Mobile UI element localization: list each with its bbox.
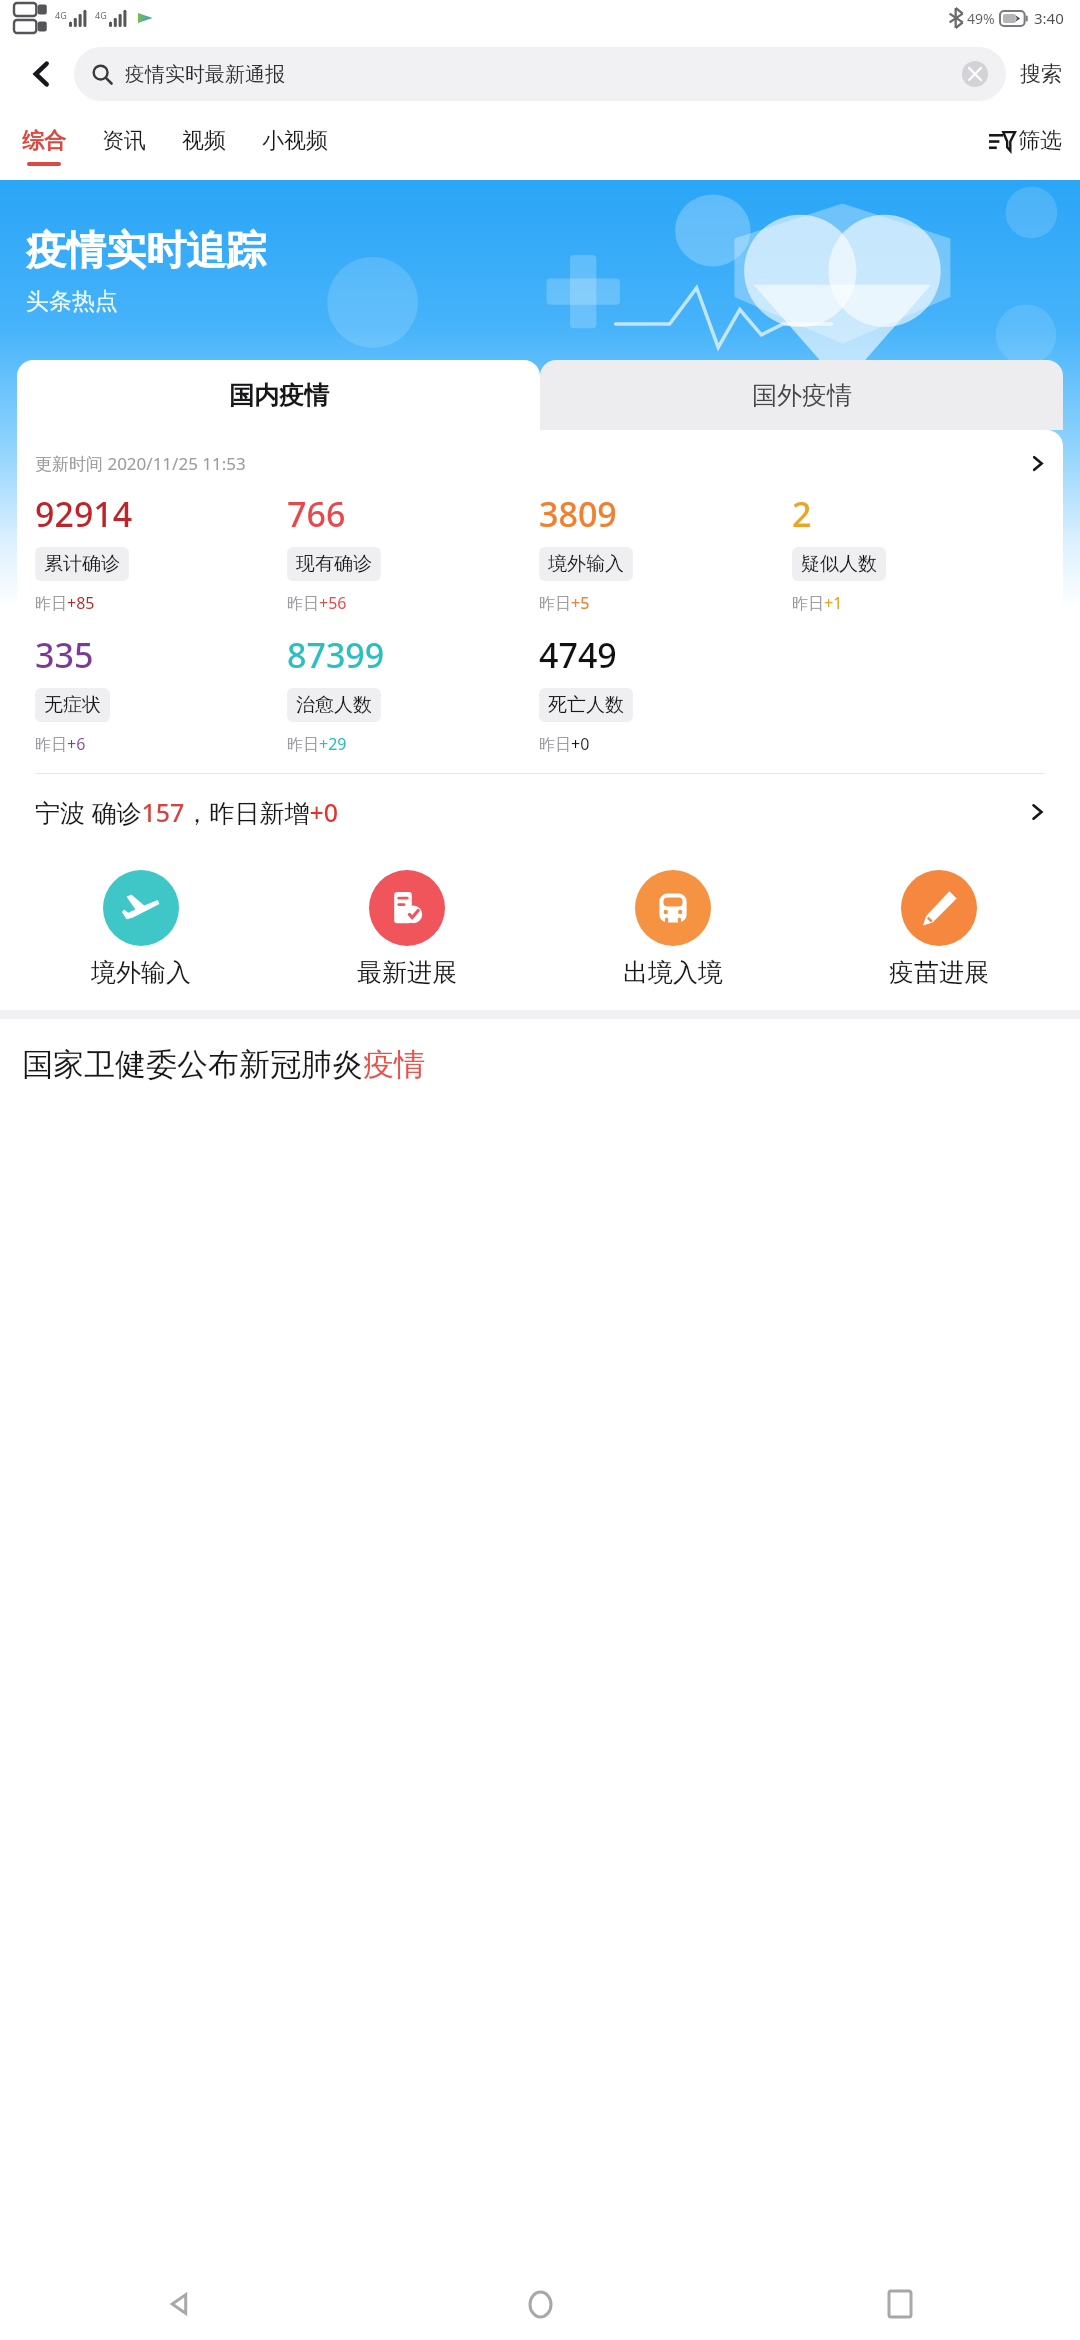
staticText: 境外输入 [548,552,624,576]
button[interactable]: 92914 [35,491,287,614]
staticText: 昨日+85 [35,592,95,614]
button[interactable]: 3809 [539,491,792,614]
staticText: 3809 [539,491,617,537]
staticText: 92914 [35,491,133,537]
button[interactable]: Back [16,48,68,100]
staticText: 国内疫情 [229,380,329,411]
button[interactable]: 宁波 确诊157，昨日新增+0 [35,774,1045,850]
staticText: 766 [287,491,346,537]
staticText: 疫情实时追踪 [26,225,266,275]
staticText: 筛选 [1018,127,1062,155]
button[interactable]: 综合 [22,127,66,166]
staticText: 国家卫健委公布新冠肺炎疫情 [22,1045,425,1084]
button[interactable]: 疫情实时最新通报 [74,47,1006,101]
button[interactable]: Back [0,2268,360,2340]
staticText: 4749 [539,632,617,678]
staticText: 87399 [287,632,385,678]
button[interactable]: 出境入境 [540,870,806,988]
staticText: 治愈人数 [296,693,372,717]
staticText: 死亡人数 [548,693,624,717]
button[interactable]: 境外输入 [8,870,274,988]
button[interactable]: 335 [35,632,287,755]
button[interactable]: 766 [287,491,539,614]
button[interactable]: 国家卫健委公布新冠肺炎疫情 [22,1045,1058,1084]
staticText: 累计确诊 [44,552,120,576]
staticText: 4G [55,9,67,21]
staticText: 宁波 确诊157，昨日新增+0 [35,795,339,829]
staticText: 疫情实时最新通报 [125,62,962,87]
staticText: 搜索 [1020,61,1062,87]
staticText: 国外疫情 [752,380,852,411]
staticText: 昨日+0 [539,733,590,755]
staticText: 无症状 [44,693,101,717]
staticText: 更新时间 2020/11/25 11:53 [35,452,246,475]
button[interactable]: 疫苗进展 [806,870,1072,988]
staticText: 335 [35,632,94,678]
button[interactable]: 国外疫情 [540,360,1063,430]
staticText: 昨日+1 [792,592,843,614]
button[interactable]: 筛选 [989,127,1080,166]
staticText: 疑似人数 [801,552,877,576]
button[interactable]: 4749 [539,632,792,755]
button[interactable]: 2 [792,491,1045,614]
staticText: 3:40 [1034,8,1064,28]
staticText: 出境入境 [623,957,723,988]
staticText: 昨日+5 [539,592,590,614]
button[interactable]: Recents [720,2268,1080,2340]
staticText: 疫苗进展 [889,957,989,988]
button[interactable]: Home [360,2268,720,2340]
staticText: 境外输入 [91,957,191,988]
button[interactable]: 视频 [182,127,226,166]
button[interactable]: 小视频 [262,127,328,166]
staticText: 昨日+6 [35,733,86,755]
staticText: 昨日+56 [287,592,347,614]
staticText: 现有确诊 [296,552,372,576]
button[interactable]: 搜索 [1006,61,1064,87]
staticText: 2 [792,491,812,537]
button[interactable]: Clear [962,61,988,87]
button[interactable]: 87399 [287,632,539,755]
staticText: 4G [95,9,107,21]
staticText: 头条热点 [26,287,118,316]
button[interactable]: 更新时间 2020/11/25 11:53 [35,452,1045,475]
staticText: 最新进展 [357,957,457,988]
button[interactable]: 国内疫情 [17,360,540,430]
button[interactable]: 最新进展 [274,870,540,988]
staticText: 49% [967,9,995,28]
staticText: 昨日+29 [287,733,347,755]
staticText: 综合 [22,127,66,155]
button[interactable]: 资讯 [102,127,146,166]
